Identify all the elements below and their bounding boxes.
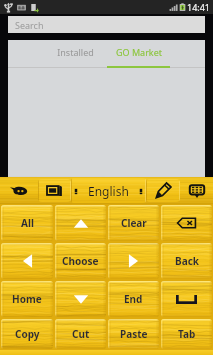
- button[interactable]: Handwriting: [146, 179, 180, 202]
- staticText: Search: [15, 19, 44, 31]
- button[interactable]: Back: [161, 243, 212, 279]
- staticText: End: [124, 292, 143, 306]
- button[interactable]: All: [1, 205, 53, 241]
- staticText: Tab: [178, 327, 196, 341]
- button[interactable]: End: [108, 281, 159, 317]
- staticText: GO Market: [116, 46, 162, 58]
- staticText: Installed: [57, 46, 94, 58]
- button[interactable]: Down: [55, 281, 106, 317]
- button[interactable]: Cut: [55, 319, 106, 349]
- button[interactable]: Home: [1, 281, 53, 317]
- button[interactable]: Right: [108, 243, 159, 279]
- staticText: Clear: [121, 216, 147, 230]
- button[interactable]: Keyboard layout: [180, 177, 213, 204]
- staticText: Choose: [62, 254, 99, 268]
- button[interactable]: Theme: [38, 179, 71, 202]
- staticText: Home: [12, 292, 42, 306]
- button[interactable]: Up: [55, 205, 106, 241]
- staticText: Cut: [72, 327, 90, 341]
- staticText: Copy: [15, 327, 40, 341]
- staticText: English: [88, 183, 129, 199]
- staticText: All: [21, 216, 34, 230]
- button[interactable]: Clear: [108, 205, 159, 241]
- button[interactable]: Search: [8, 16, 205, 33]
- button[interactable]: Installed: [44, 40, 107, 68]
- staticText: Back: [175, 254, 199, 268]
- staticText: Paste: [120, 327, 148, 341]
- button[interactable]: Choose: [55, 243, 106, 279]
- button[interactable]: GO Keyboard menu: [0, 177, 38, 204]
- button[interactable]: Left: [1, 243, 53, 279]
- button[interactable]: English: [71, 178, 146, 203]
- button[interactable]: Space: [161, 281, 212, 317]
- staticText: 14:41: [187, 1, 211, 13]
- button[interactable]: GO Market: [107, 40, 170, 68]
- button[interactable]: Copy: [1, 319, 53, 349]
- button[interactable]: Tab: [161, 319, 212, 349]
- button[interactable]: Backspace: [161, 205, 212, 241]
- button[interactable]: Paste: [108, 319, 159, 349]
